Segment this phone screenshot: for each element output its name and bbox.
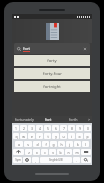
button[interactable]: d <box>33 141 41 147</box>
button[interactable]: k <box>74 141 81 147</box>
button[interactable]: q <box>13 133 19 139</box>
staticText: p <box>86 134 89 139</box>
button[interactable]: Search <box>81 157 91 163</box>
button[interactable]: 3 <box>28 125 35 131</box>
button[interactable]: e <box>28 133 35 139</box>
staticText: 4 <box>39 126 41 131</box>
staticText: j <box>69 142 70 147</box>
staticText: t <box>47 134 49 139</box>
staticText: s <box>27 142 29 147</box>
button[interactable]: , <box>32 157 39 163</box>
button[interactable]: 0 <box>84 125 91 131</box>
button[interactable]: 6 <box>52 125 59 131</box>
button[interactable]: r <box>36 133 43 139</box>
button[interactable]: 7 <box>60 125 67 131</box>
button[interactable]: forty-four <box>14 68 90 79</box>
staticText: d <box>36 142 39 147</box>
staticText: l <box>85 142 86 147</box>
button[interactable]: Settings <box>23 157 31 163</box>
staticText: forth <box>69 117 78 122</box>
button[interactable]: b <box>57 149 64 155</box>
button[interactable]: . <box>73 157 80 163</box>
staticText: w <box>22 134 25 139</box>
staticText: , <box>35 158 36 163</box>
staticText: q <box>15 134 18 139</box>
button[interactable]: l <box>82 141 89 147</box>
button[interactable]: 2 <box>20 125 27 131</box>
staticText: e <box>31 134 33 139</box>
button[interactable]: a <box>15 141 23 147</box>
staticText: fortunately <box>15 117 34 122</box>
staticText: g <box>52 142 55 147</box>
staticText: 5 <box>47 126 49 131</box>
staticText: x <box>36 150 38 155</box>
button[interactable]: j <box>66 141 73 147</box>
button[interactable]: More suggestions <box>86 116 92 123</box>
staticText: r <box>39 134 41 139</box>
button[interactable]: w <box>20 133 27 139</box>
staticText: 8 <box>71 126 73 131</box>
staticText: 3 <box>31 126 33 131</box>
staticText: Sym <box>15 158 21 162</box>
button[interactable]: m <box>73 149 80 155</box>
button[interactable]: g <box>50 141 57 147</box>
staticText: c <box>44 150 46 155</box>
button[interactable]: Sym <box>13 157 22 163</box>
button[interactable]: fort <box>36 116 61 123</box>
staticText: forty <box>47 58 57 64</box>
button[interactable]: u <box>60 133 67 139</box>
button[interactable]: z <box>25 149 32 155</box>
staticText: 9 <box>79 126 81 131</box>
button[interactable]: 9 <box>76 125 83 131</box>
staticText: v <box>52 150 54 155</box>
staticText: o <box>78 134 81 139</box>
staticText: fortnight <box>43 84 61 90</box>
button[interactable]: v <box>49 149 56 155</box>
staticText: > <box>88 117 91 122</box>
staticText: 7 <box>63 126 65 131</box>
button[interactable]: o <box>76 133 83 139</box>
button[interactable]: n <box>65 149 72 155</box>
staticText: 0 <box>87 126 89 131</box>
staticText: . <box>76 158 77 163</box>
button[interactable]: x <box>33 149 40 155</box>
other: Search <box>17 47 21 51</box>
staticText: m <box>75 150 79 155</box>
button[interactable]: forth <box>61 116 86 123</box>
staticText: fort <box>45 117 52 122</box>
button[interactable]: t <box>44 133 51 139</box>
button[interactable]: Shift <box>13 149 24 155</box>
staticText: k <box>77 142 79 147</box>
other: Clear <box>83 47 87 51</box>
button[interactable]: fortnight <box>14 81 90 92</box>
staticText: h <box>60 142 63 147</box>
staticText: f <box>45 142 47 147</box>
button[interactable]: h <box>58 141 65 147</box>
staticText: n <box>67 150 70 155</box>
staticText: English(US) <box>49 158 63 162</box>
staticText: y <box>55 134 57 139</box>
staticText: z <box>28 150 30 155</box>
button[interactable]: Backspace <box>81 149 91 155</box>
button[interactable]: forty <box>14 55 90 66</box>
staticText: u <box>62 134 65 139</box>
staticText: 6 <box>55 126 57 131</box>
button[interactable]: p <box>84 133 91 139</box>
button[interactable]: f <box>42 141 49 147</box>
button[interactable]: y <box>52 133 59 139</box>
button[interactable]: c <box>41 149 48 155</box>
button[interactable]: i <box>68 133 75 139</box>
button[interactable]: Search <box>14 43 90 54</box>
button[interactable]: 1 <box>13 125 19 131</box>
button[interactable]: s <box>24 141 32 147</box>
button[interactable]: 4 <box>36 125 43 131</box>
staticText: i <box>71 134 72 139</box>
button[interactable]: English(US) <box>40 157 72 163</box>
button[interactable]: 8 <box>68 125 75 131</box>
button[interactable]: fortunately <box>12 116 36 123</box>
staticText: fort <box>23 46 30 51</box>
staticText: a <box>18 142 20 147</box>
button[interactable]: 5 <box>44 125 51 131</box>
staticText: forty-four <box>43 71 62 77</box>
staticText: 1 <box>15 126 17 131</box>
